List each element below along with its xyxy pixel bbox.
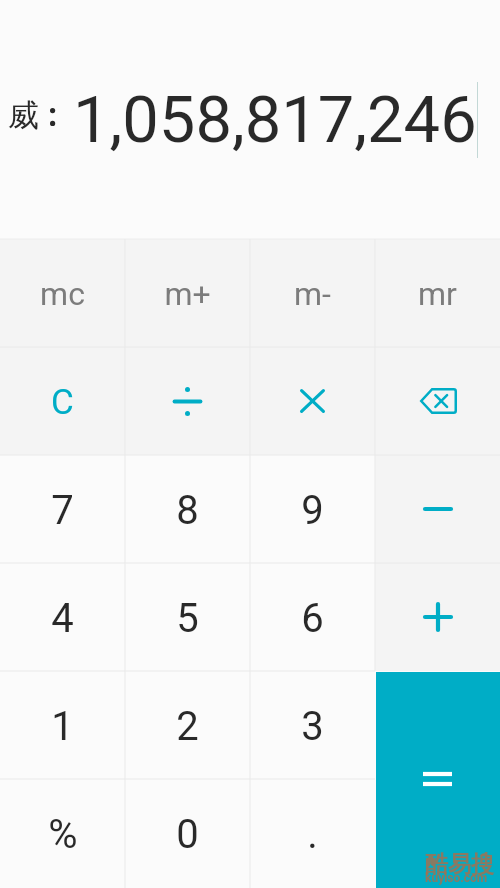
button[interactable]: mr	[375, 239, 500, 347]
staticText: 2	[176, 703, 199, 750]
button[interactable]: 4	[0, 563, 125, 671]
button[interactable]: .	[250, 779, 375, 888]
button[interactable]: m+	[125, 239, 250, 347]
staticText: .	[307, 811, 318, 858]
button[interactable]: Multiply	[250, 347, 375, 455]
button[interactable]: Backspace	[375, 347, 500, 455]
button[interactable]: 6	[250, 563, 375, 671]
staticText: 威	[8, 96, 39, 135]
staticText: mr	[418, 275, 457, 313]
staticText: mc	[40, 275, 85, 313]
staticText: 酷易搜	[425, 850, 494, 879]
staticText: 5	[176, 595, 199, 642]
staticText: 4	[51, 595, 74, 642]
button[interactable]: Equals	[375, 671, 500, 888]
button[interactable]: 7	[0, 455, 125, 563]
staticText: C	[51, 382, 74, 423]
staticText: 7	[51, 487, 74, 534]
button[interactable]: 8	[125, 455, 250, 563]
button[interactable]: 3	[250, 671, 375, 779]
staticText: 1	[51, 703, 74, 750]
staticText: m-	[294, 275, 331, 313]
button[interactable]: %	[0, 779, 125, 888]
button[interactable]: C	[0, 347, 125, 455]
button[interactable]: 0	[125, 779, 250, 888]
button[interactable]: Minus	[375, 455, 500, 563]
staticText: %	[48, 811, 78, 858]
staticText: 3	[301, 703, 324, 750]
staticText: m+	[164, 275, 211, 313]
staticText: 0	[176, 811, 199, 858]
button[interactable]: m-	[250, 239, 375, 347]
staticText: 1,058,817,246	[73, 82, 477, 158]
button[interactable]: 9	[250, 455, 375, 563]
button[interactable]: 1	[0, 671, 125, 779]
button[interactable]: 2	[125, 671, 250, 779]
button[interactable]: mc	[0, 239, 125, 347]
button[interactable]: Plus	[375, 563, 500, 671]
button[interactable]: 5	[125, 563, 250, 671]
staticText: 8	[176, 487, 199, 534]
staticText: kuyiso.com	[425, 871, 488, 885]
button[interactable]: Divide	[125, 347, 250, 455]
staticText: 6	[301, 595, 324, 642]
staticText: 9	[301, 487, 324, 534]
